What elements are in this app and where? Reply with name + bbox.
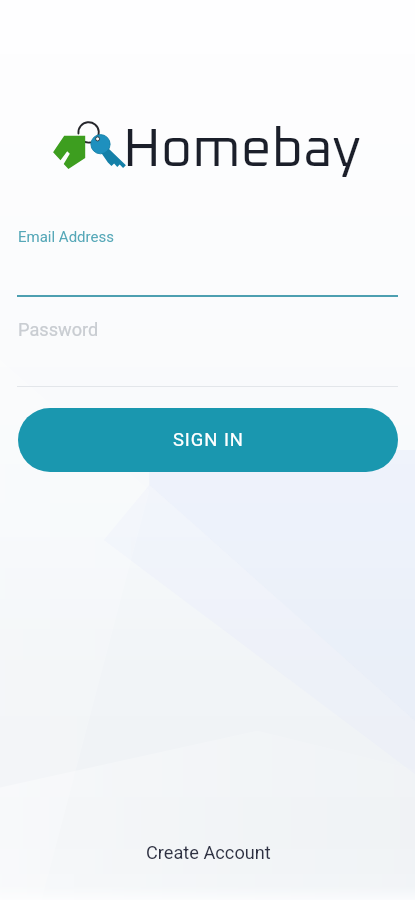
- button[interactable]: Create Account: [131, 830, 286, 874]
- staticText: Create Account: [146, 842, 271, 863]
- staticText: Password: [18, 319, 99, 340]
- button[interactable]: SIGN IN: [18, 408, 398, 472]
- staticText: SIGN IN: [173, 429, 244, 451]
- staticText: Homebay: [123, 123, 361, 177]
- staticText: Email Address: [18, 228, 114, 246]
